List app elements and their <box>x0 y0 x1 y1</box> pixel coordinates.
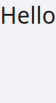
staticText: Hello <box>0 0 56 30</box>
